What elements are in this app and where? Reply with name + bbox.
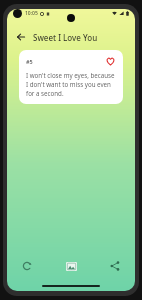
staticText: I won't close my eyes, because I don't w…: [26, 71, 116, 98]
staticText: #5: [26, 58, 33, 65]
staticText: 10:05: [25, 10, 38, 17]
button[interactable]: Favorite: [105, 56, 116, 67]
button[interactable]: Image: [61, 256, 81, 276]
staticText: Sweet I Love You: [33, 32, 98, 43]
button[interactable]: #5: [19, 50, 123, 104]
button[interactable]: Share: [105, 256, 125, 276]
button[interactable]: Back: [13, 29, 29, 45]
button[interactable]: Refresh: [17, 256, 37, 276]
